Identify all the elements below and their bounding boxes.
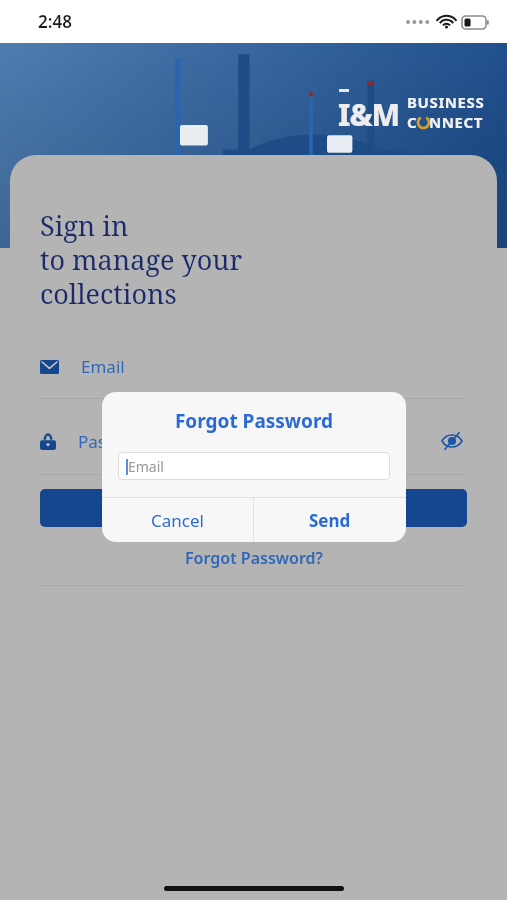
staticText: Password [78, 430, 155, 453]
button[interactable]: Cancel [102, 498, 253, 542]
button[interactable]: Forgot Password? [40, 547, 467, 569]
staticText: Send [309, 509, 351, 532]
staticText: I&M [338, 94, 400, 135]
staticText: 2:48 [38, 10, 72, 33]
staticText: C [407, 112, 418, 132]
staticText: Forgot Password [102, 408, 406, 434]
staticText: Forgot Password? [185, 547, 323, 569]
staticText: NNECT [429, 112, 484, 132]
button[interactable]: Show password [437, 426, 467, 456]
staticText: Sign in [227, 497, 280, 519]
staticText: Sign in to manage your collections [40, 207, 243, 312]
staticText: Email [81, 355, 125, 378]
button[interactable]: Send [254, 498, 406, 542]
staticText: Cancel [151, 509, 204, 532]
button[interactable]: Password [40, 426, 467, 456]
button[interactable]: Email [118, 452, 390, 480]
staticText: BUSINESS [407, 92, 485, 112]
staticText: Email [128, 457, 164, 476]
button[interactable]: Email [40, 355, 467, 378]
button[interactable]: Sign in [40, 489, 467, 527]
